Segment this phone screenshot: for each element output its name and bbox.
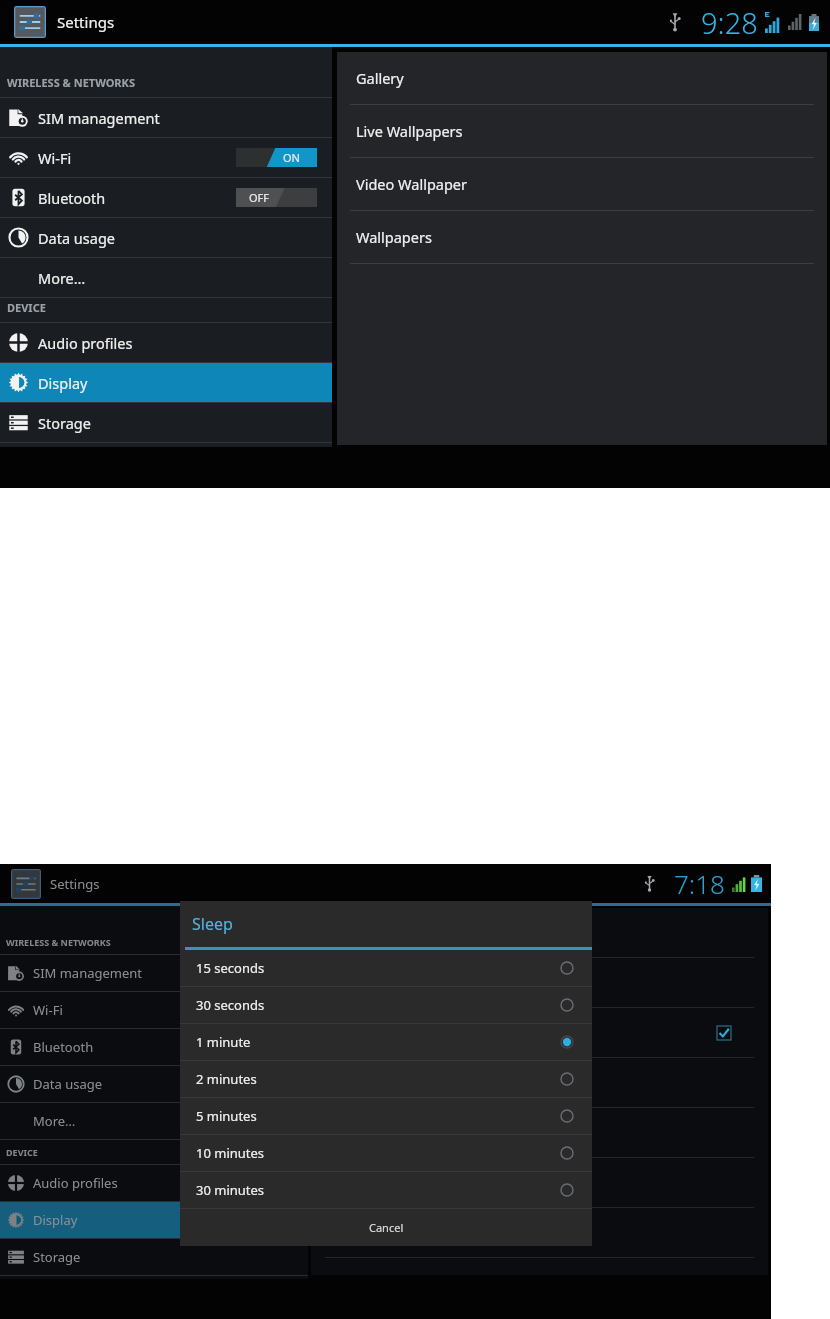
button[interactable]: 2 minutes (180, 1061, 592, 1098)
staticText: Audio profiles (38, 333, 133, 353)
button[interactable]: Bluetooth (0, 1029, 308, 1065)
staticText: Audio profiles (33, 1174, 118, 1192)
button[interactable]: Settings (11, 864, 100, 903)
staticText: Cancel (369, 1220, 404, 1235)
button[interactable]: Live Wallpapers (337, 105, 827, 158)
button[interactable] (311, 958, 768, 1008)
button[interactable] (311, 1008, 768, 1058)
button[interactable]: Audio profiles (0, 323, 332, 362)
staticText: 2 minutes (196, 1070, 257, 1088)
button[interactable]: Bluetooth (0, 178, 332, 217)
staticText: Storage (33, 1248, 81, 1266)
button[interactable]: Settings (14, 0, 115, 44)
staticText: Display (38, 373, 88, 393)
staticText: Bluetooth (33, 1038, 94, 1056)
button[interactable]: SIM management (0, 98, 332, 137)
button[interactable]: 1 minute (180, 1024, 592, 1061)
staticText: WIRELESS & NETWORKS (6, 936, 111, 948)
button[interactable]: 10 minutes (180, 1135, 592, 1172)
button[interactable]: Data usage (0, 1066, 308, 1102)
button[interactable]: More… (0, 258, 332, 297)
button[interactable]: More… (0, 1103, 308, 1139)
staticText: SIM management (38, 108, 160, 128)
button[interactable]: Storage (0, 403, 332, 442)
button[interactable]: Wallpapers (337, 211, 827, 264)
staticText: 1 minute (196, 1033, 251, 1051)
button[interactable]: Audio profiles (0, 1165, 308, 1201)
staticText: 7:18 (674, 866, 725, 901)
button[interactable]: 30 minutes (180, 1172, 592, 1209)
staticText: ON (283, 150, 300, 165)
staticText: Data usage (38, 228, 115, 248)
staticText: Bluetooth (38, 188, 106, 208)
button[interactable]: Wi-Fi (0, 992, 308, 1028)
staticText: Sleep (192, 913, 233, 935)
staticText: Settings (57, 12, 115, 32)
staticText: OFF (249, 190, 270, 205)
button[interactable]: 30 seconds (180, 987, 592, 1024)
staticText: 30 minutes (196, 1181, 265, 1199)
staticText: Wallpapers (356, 227, 432, 247)
staticText: 30 seconds (196, 996, 265, 1014)
button[interactable]: Data usage (0, 218, 332, 257)
button[interactable]: 5 minutes (180, 1098, 592, 1135)
staticText: Storage (38, 413, 91, 433)
button[interactable]: Display (0, 1202, 308, 1238)
button[interactable] (311, 1208, 768, 1258)
staticText: WIRELESS & NETWORKS (7, 75, 135, 90)
staticText: Gallery (356, 68, 404, 88)
button[interactable]: 15 seconds (180, 950, 592, 987)
staticText: 15 seconds (196, 959, 265, 977)
staticText: More… (38, 268, 86, 288)
button[interactable]: Storage (0, 1239, 308, 1275)
button[interactable]: Video Wallpaper (337, 158, 827, 211)
staticText: 10 minutes (196, 1144, 265, 1162)
staticText: Data usage (33, 1075, 103, 1093)
button[interactable] (311, 1108, 768, 1158)
button[interactable]: Switch off (236, 188, 317, 207)
staticText: Display (33, 1211, 78, 1229)
button[interactable] (311, 908, 768, 958)
button[interactable]: Display (0, 363, 332, 402)
staticText: Wi-Fi (38, 148, 72, 168)
staticText: Settings (50, 875, 100, 893)
staticText: Video Wallpaper (356, 174, 468, 194)
button[interactable]: Cancel (180, 1209, 592, 1246)
button[interactable]: Wi-Fi (0, 138, 332, 177)
button[interactable] (311, 1058, 768, 1108)
staticText: SIM management (33, 964, 143, 982)
staticText: DEVICE (7, 300, 46, 315)
button[interactable]: Gallery (337, 52, 827, 105)
staticText: 5 minutes (196, 1107, 257, 1125)
staticText: Wi-Fi (33, 1001, 63, 1019)
staticText: Live Wallpapers (356, 121, 463, 141)
staticText: More… (33, 1112, 76, 1130)
button[interactable]: Switch on (236, 148, 317, 167)
staticText: 9:28 (701, 3, 758, 42)
staticText: DEVICE (6, 1146, 38, 1158)
button[interactable] (311, 1158, 768, 1208)
button[interactable]: SIM management (0, 955, 308, 991)
